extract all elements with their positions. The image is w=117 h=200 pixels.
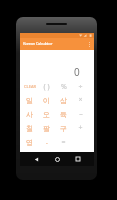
button[interactable]: CLEAR <box>21 80 38 93</box>
staticText: 오 <box>43 110 50 119</box>
staticText: 팔 <box>43 124 50 133</box>
button[interactable]: 영 <box>21 135 38 149</box>
button[interactable]: 구 <box>55 121 72 135</box>
staticText: 구 <box>60 124 67 133</box>
button[interactable]: + <box>72 121 89 135</box>
button[interactable]: % <box>55 80 72 93</box>
button[interactable]: 칠 <box>21 121 38 135</box>
button[interactable]: More options <box>84 39 94 49</box>
button[interactable]: 오 <box>38 107 55 121</box>
staticText: 0 <box>74 65 80 79</box>
button[interactable]: Recents <box>73 154 83 164</box>
button[interactable]: Home <box>52 154 62 164</box>
button[interactable]: 삼 <box>55 93 72 107</box>
staticText: CLEAR <box>24 84 36 89</box>
staticText: 이 <box>43 96 50 105</box>
staticText: 일 <box>26 96 33 105</box>
staticText: + <box>78 123 83 133</box>
button[interactable]: Back <box>31 154 41 164</box>
staticText: 육 <box>60 110 67 119</box>
staticText: ( ) <box>43 82 50 92</box>
button[interactable]: – <box>72 107 89 121</box>
button[interactable]: 육 <box>55 107 72 121</box>
button[interactable]: 사 <box>21 107 38 121</box>
button[interactable]: Korean Calculator <box>20 38 94 50</box>
staticText: 사 <box>26 110 33 119</box>
button[interactable]: . <box>38 135 55 149</box>
button[interactable]: ( ) <box>38 80 55 93</box>
button[interactable]: ÷ <box>72 80 89 93</box>
staticText: × <box>78 95 83 105</box>
staticText: Korean Calculator <box>23 41 53 47</box>
button[interactable]: 이 <box>38 93 55 107</box>
staticText: 영 <box>26 138 33 147</box>
staticText: 칠 <box>26 124 33 133</box>
staticText: 삼 <box>60 96 67 105</box>
staticText: ÷ <box>78 82 83 92</box>
button[interactable]: = <box>55 135 72 149</box>
staticText: % <box>61 82 67 92</box>
staticText: = <box>61 137 66 147</box>
staticText: . <box>46 137 48 147</box>
staticText: – <box>79 109 83 119</box>
button[interactable]: × <box>72 93 89 107</box>
button[interactable]: 팔 <box>38 121 55 135</box>
button[interactable]: 일 <box>21 93 38 107</box>
